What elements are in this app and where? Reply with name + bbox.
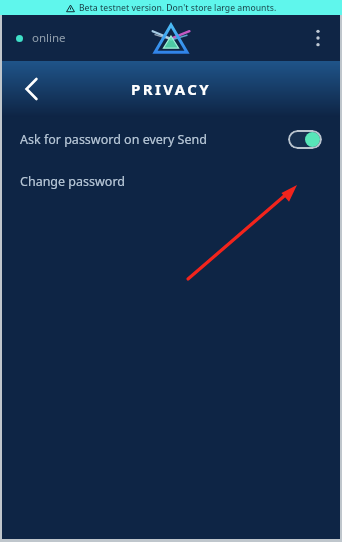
- staticText: PRIVACY: [131, 79, 212, 99]
- staticText: online: [32, 30, 66, 46]
- button[interactable]: Ask for password on every Send: [2, 117, 340, 161]
- staticText: Beta testnet version. Don't store large …: [79, 2, 277, 14]
- button[interactable]: More options: [304, 24, 332, 52]
- button[interactable]: Change password: [2, 161, 340, 201]
- button[interactable]: Ask for password on every Send toggle: [288, 130, 322, 149]
- button[interactable]: Back: [14, 72, 48, 106]
- staticText: Ask for password on every Send: [20, 131, 288, 148]
- staticText: Change password: [20, 173, 126, 190]
- button[interactable]: online: [16, 30, 66, 46]
